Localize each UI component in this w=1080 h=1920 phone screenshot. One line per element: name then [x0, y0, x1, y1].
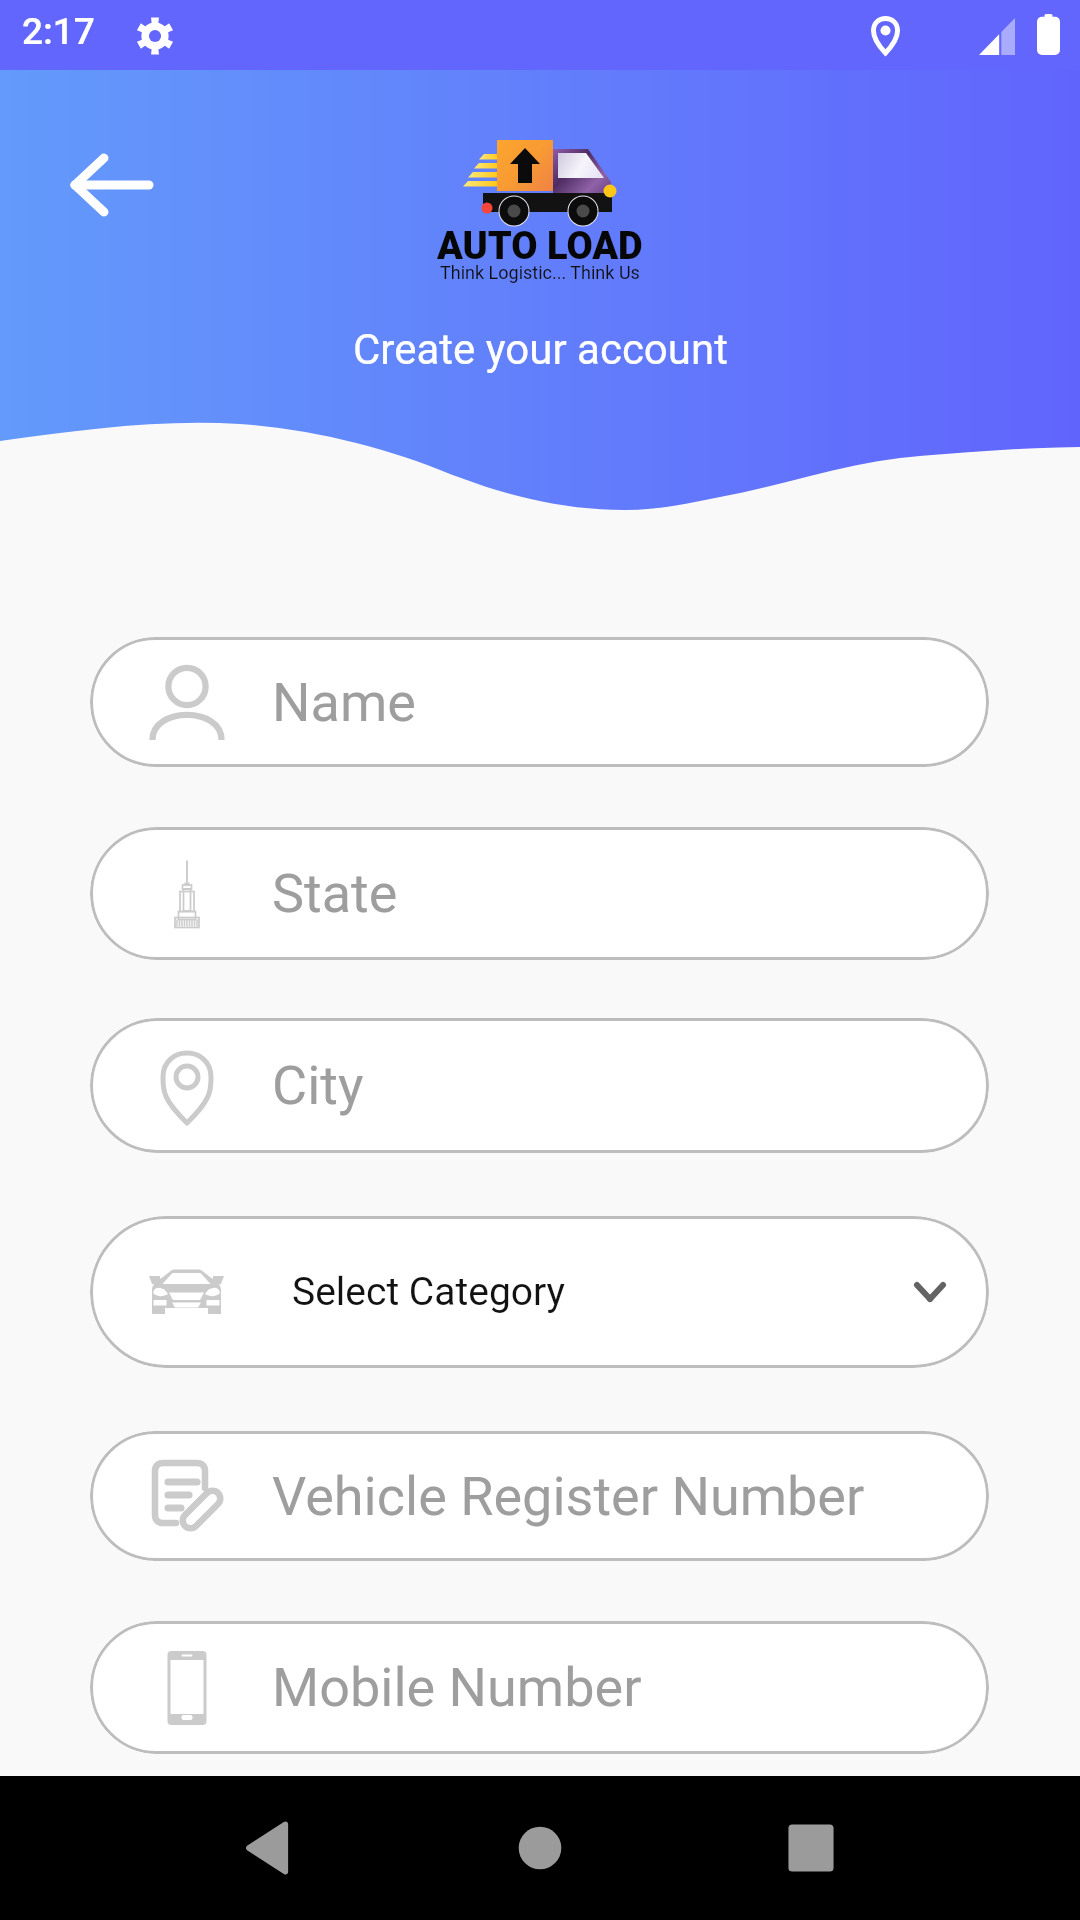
button[interactable]: Mobile Number: [90, 1621, 989, 1754]
button[interactable]: Home: [492, 1800, 588, 1896]
button[interactable]: Select Category: [90, 1216, 989, 1368]
button[interactable]: Name: [90, 637, 989, 767]
staticText: Select Category: [292, 1269, 566, 1315]
staticText: Think Logistic... Think Us: [440, 262, 640, 283]
button[interactable]: State: [90, 827, 989, 960]
staticText: Mobile Number: [272, 1656, 642, 1719]
button[interactable]: Back: [219, 1800, 315, 1896]
staticText: City: [272, 1054, 364, 1117]
staticText: State: [272, 862, 398, 925]
staticText: AUTO LOAD: [437, 224, 643, 269]
staticText: 2:17: [22, 10, 95, 53]
button[interactable]: City: [90, 1018, 989, 1153]
staticText: Create your account: [353, 325, 728, 374]
staticText: Name: [272, 671, 416, 734]
button[interactable]: Back: [70, 155, 152, 215]
button[interactable]: Vehicle Register Number: [90, 1431, 989, 1561]
staticText: Vehicle Register Number: [272, 1465, 865, 1528]
button[interactable]: Recent apps: [763, 1800, 859, 1896]
